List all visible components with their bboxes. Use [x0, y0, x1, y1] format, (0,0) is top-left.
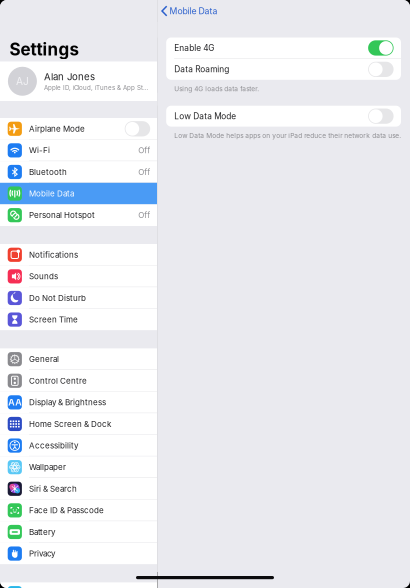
- button[interactable]: Do Not Disturb: [0, 287, 157, 309]
- button[interactable]: Siri & Search: [0, 478, 157, 500]
- staticText: Off: [138, 146, 150, 155]
- staticText: Using 4G loads data faster.: [174, 85, 259, 93]
- staticText: Off: [138, 167, 150, 177]
- button[interactable]: Face ID & Passcode: [0, 500, 157, 521]
- staticText: Siri & Search: [29, 484, 77, 494]
- staticText: Notifications: [29, 250, 78, 260]
- staticText: AJ: [16, 75, 29, 87]
- staticText: Airplane Mode: [29, 124, 85, 134]
- staticText: Sounds: [29, 272, 58, 281]
- staticText: Control Centre: [29, 376, 87, 386]
- staticText: Mobile Data: [169, 6, 217, 16]
- button[interactable]: Control Centre: [0, 370, 157, 392]
- staticText: Enable 4G: [174, 43, 214, 53]
- button[interactable]: Bluetooth: [0, 161, 157, 183]
- button[interactable]: Accessibility: [0, 435, 157, 456]
- staticText: Home Screen & Dock: [29, 419, 111, 429]
- button[interactable]: Screen Time: [0, 309, 157, 330]
- staticText: Face ID & Passcode: [29, 506, 104, 515]
- button[interactable]: Personal Hotspot: [0, 204, 157, 226]
- staticText: AA: [8, 397, 21, 408]
- staticText: Personal Hotspot: [29, 210, 95, 220]
- staticText: Privacy: [29, 549, 55, 558]
- button[interactable]: Privacy: [0, 543, 157, 564]
- staticText: Wi-Fi: [29, 146, 50, 155]
- button[interactable]: Battery: [0, 521, 157, 543]
- staticText: Do Not Disturb: [29, 293, 86, 303]
- staticText: Wallpaper: [29, 462, 66, 472]
- staticText: Apple ID, iCloud, iTunes & App St…: [44, 84, 148, 91]
- button[interactable]: Home Screen & Dock: [0, 413, 157, 435]
- button[interactable]: Sounds: [0, 266, 157, 287]
- staticText: Settings: [9, 39, 78, 59]
- button[interactable]: Low Data Mode: [166, 106, 401, 127]
- button[interactable]: AJ: [0, 61, 157, 101]
- staticText: Accessibility: [29, 441, 78, 450]
- staticText: Battery: [29, 527, 55, 537]
- staticText: Mobile Data: [29, 189, 74, 198]
- button[interactable]: Mobile Data: [0, 183, 157, 204]
- staticText: Screen Time: [29, 315, 78, 324]
- staticText: Alan Jones: [44, 71, 95, 83]
- button[interactable]: Notifications: [0, 244, 157, 266]
- button[interactable]: Enable 4G: [166, 37, 401, 58]
- staticText: Bluetooth: [29, 167, 67, 177]
- button[interactable]: Mobile Data: [158, 0, 410, 22]
- staticText: Data Roaming: [174, 64, 229, 74]
- staticText: Display & Brightness: [29, 398, 106, 407]
- staticText: Low Data Mode: [174, 111, 236, 121]
- button[interactable]: General: [0, 348, 157, 370]
- button[interactable]: Wi-Fi: [0, 140, 157, 161]
- button[interactable]: AA: [0, 392, 157, 413]
- staticText: Low Data Mode helps apps on your iPad re…: [174, 132, 401, 139]
- staticText: General: [29, 354, 59, 364]
- button[interactable]: Airplane Mode: [0, 118, 157, 140]
- button[interactable]: App Store: [0, 582, 157, 588]
- button[interactable]: Wallpaper: [0, 456, 157, 478]
- button[interactable]: Data Roaming: [166, 59, 401, 80]
- staticText: Off: [138, 210, 150, 220]
